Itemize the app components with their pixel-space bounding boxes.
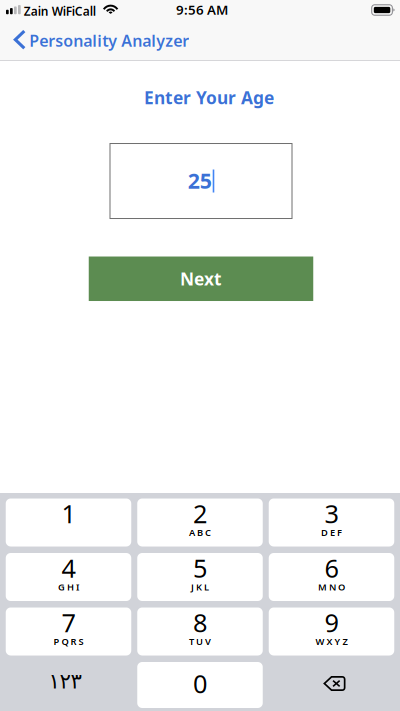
button[interactable]: 5 [137,553,263,601]
button[interactable]: 3 [269,498,394,546]
staticText: Next [180,267,222,290]
button[interactable]: 6 [269,553,394,601]
staticText: 2 [193,497,207,530]
staticText: A B C [189,526,211,539]
button[interactable]: 0 [137,662,263,708]
button[interactable]: 8 [137,607,263,655]
staticText: 9:56 AM [176,1,228,18]
staticText: Enter Your Age [144,86,274,109]
button[interactable]: Next [89,256,313,301]
staticText: Zain WiFiCall [24,3,96,19]
button[interactable]: 4 [6,553,131,601]
button[interactable]: ١٢٣ [6,662,131,708]
button[interactable]: 9 [269,607,394,655]
staticText: 0 [193,667,207,700]
staticText: 3 [324,497,338,530]
button[interactable]: 7 [6,607,131,655]
button[interactable]: Personality Analyzer [0,22,199,60]
staticText: M N O [318,581,345,593]
staticText: 9 [324,606,338,639]
staticText: T U V [189,635,211,648]
staticText: 25 [188,166,212,195]
staticText: 5 [193,551,207,585]
staticText: 1 [61,497,75,530]
staticText: ١٢٣ [48,669,81,693]
button[interactable]: Delete [269,662,394,708]
staticText: J K L [191,581,209,593]
staticText: D E F [321,526,342,539]
staticText: 4 [61,551,75,585]
button[interactable]: 2 [137,498,263,546]
button[interactable]: 1 [6,498,131,546]
staticText: G H I [58,581,79,593]
staticText: 6 [324,551,338,585]
staticText: W X Y Z [315,635,347,648]
staticText: P Q R S [53,635,83,648]
staticText: 7 [61,606,75,639]
staticText: Personality Analyzer [29,30,189,51]
staticText: 8 [193,606,207,639]
